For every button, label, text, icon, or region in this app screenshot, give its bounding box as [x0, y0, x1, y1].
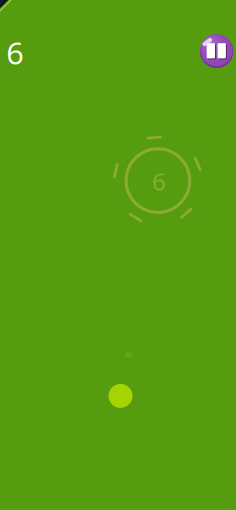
staticText: 6 — [152, 165, 166, 197]
button[interactable]: Pause — [197, 32, 235, 70]
staticText: 6 — [6, 32, 24, 73]
